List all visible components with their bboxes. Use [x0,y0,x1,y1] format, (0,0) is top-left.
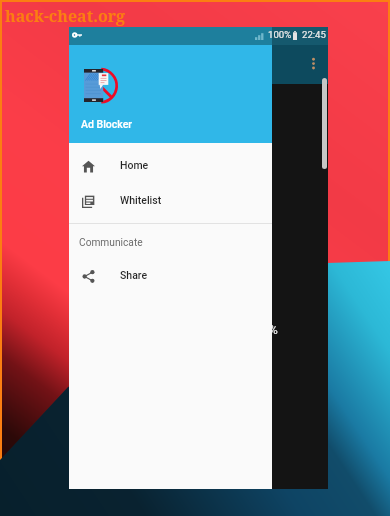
staticText: Share [120,269,148,281]
staticText: Whitelist [120,194,162,206]
staticText: % [269,323,278,337]
button[interactable]: Ad Blocker [69,45,272,143]
button[interactable]: More options [308,55,319,73]
staticText: Home [120,159,149,171]
staticText: 22:45 [302,29,326,40]
staticText: Ad Blocker [81,118,133,130]
staticText: hack-cheat.org [5,5,126,27]
staticText: 100% [268,29,292,40]
staticText: Communicate [79,237,143,249]
button[interactable]: Home [69,149,272,183]
button[interactable]: Share [69,259,272,293]
button[interactable]: Whitelist [69,184,272,218]
